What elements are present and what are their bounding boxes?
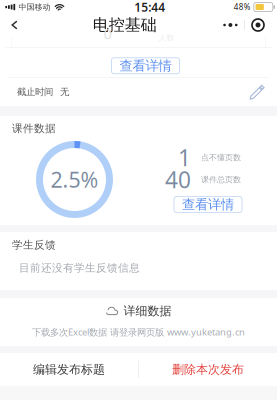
staticText: 查看详情: [182, 196, 234, 213]
staticText: 1: [178, 142, 191, 172]
button[interactable]: 删除本次发布: [139, 353, 277, 386]
staticText: 课件总页数: [201, 175, 241, 184]
staticText: 编辑发布标题: [33, 362, 105, 377]
button[interactable]: 详细数据: [0, 298, 277, 324]
staticText: 电控基础: [93, 15, 157, 35]
staticText: 无: [60, 86, 69, 98]
staticText: 目前还没有学生反馈信息: [19, 261, 140, 274]
button[interactable]: 查看详情: [174, 196, 242, 212]
staticText: 查看详情: [119, 58, 171, 74]
staticText: 学生反馈: [12, 238, 56, 251]
staticText: 详细数据: [123, 304, 171, 318]
staticText: 15:44: [134, 0, 165, 15]
button[interactable]: 查看详情: [111, 58, 179, 74]
button[interactable]: More: [216, 15, 244, 35]
staticText: 点不懂页数: [201, 153, 241, 162]
staticText: 中国移动: [18, 2, 50, 12]
staticText: 删除本次发布: [172, 362, 244, 377]
staticText: 0: [103, 24, 111, 43]
button[interactable]: 编辑发布标题: [0, 353, 138, 386]
staticText: 2.5%: [50, 165, 98, 194]
staticText: 人数: [158, 33, 174, 43]
staticText: 课件数据: [12, 122, 56, 135]
staticText: 48%: [234, 2, 251, 12]
button[interactable]: Edit deadline: [250, 84, 265, 99]
staticText: 40: [165, 164, 191, 194]
button[interactable]: Back: [11, 14, 33, 36]
staticText: 截止时间: [17, 86, 53, 98]
button[interactable]: Close: [245, 15, 271, 35]
staticText: 下载多次Excel数据 请登录网页版 www.yuketang.cn: [32, 326, 245, 338]
